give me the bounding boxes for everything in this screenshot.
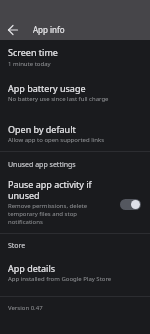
button[interactable]: Screen time	[0, 43, 150, 73]
staticText: App info	[33, 24, 150, 35]
staticText: Version 0.47	[8, 304, 150, 312]
staticText: Unused app settings	[8, 160, 150, 170]
staticText: App details	[8, 262, 150, 274]
staticText: Store	[8, 241, 150, 251]
staticText: Screen time	[8, 46, 150, 58]
staticText: Remove permissions, delete temporary fil…	[8, 202, 98, 226]
button[interactable]	[4, 21, 22, 39]
button[interactable]: Open by default	[0, 121, 150, 149]
staticText: Open by default	[8, 123, 150, 135]
staticText: 1 minute today	[8, 60, 150, 68]
staticText: App installed from Google Play Store	[8, 275, 150, 283]
staticText: App battery usage	[8, 82, 150, 94]
button[interactable]: App battery usage	[0, 80, 150, 108]
staticText: Pause app activity if unused	[8, 178, 108, 201]
button[interactable]: Pause app activity if unused	[0, 176, 150, 228]
staticText: Allow app to open supported links	[8, 136, 150, 144]
staticText: No battery use since last full charge	[8, 95, 150, 103]
button[interactable]: App details	[0, 260, 150, 288]
